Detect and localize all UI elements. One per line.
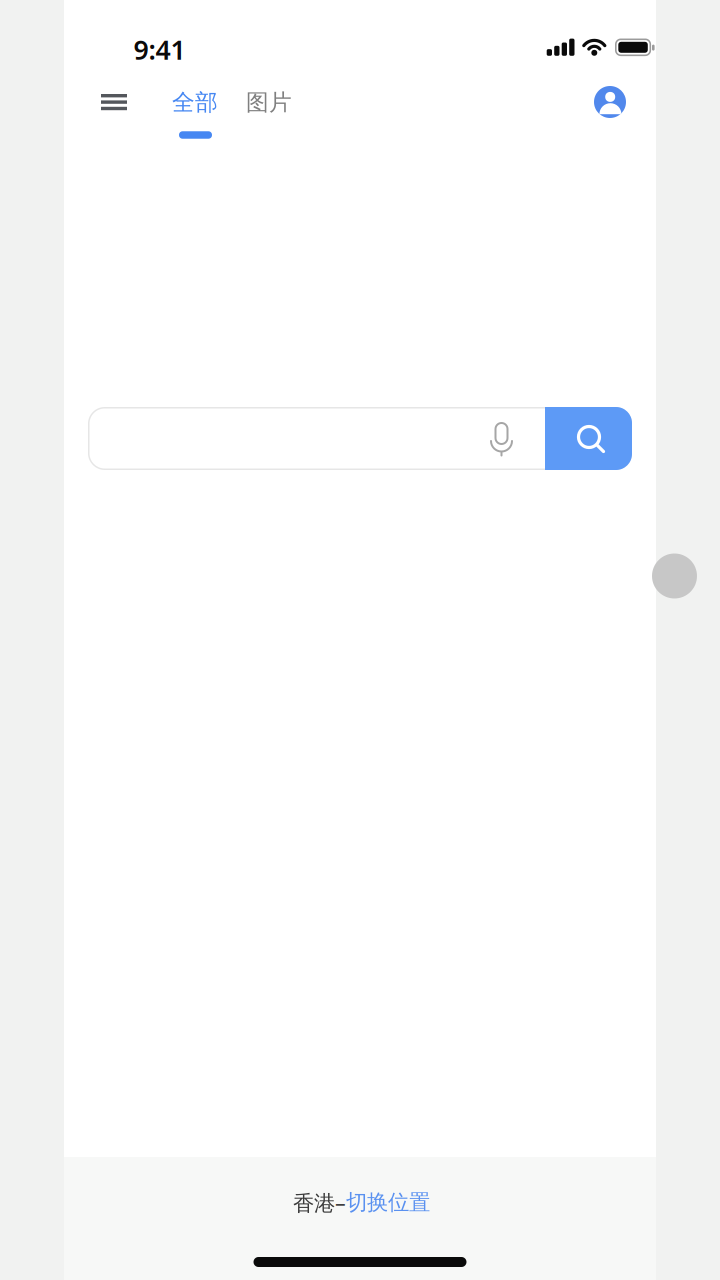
button[interactable]: 全部 [162,78,228,126]
button[interactable]: Search field [88,407,632,470]
button[interactable]: 图片 [236,78,302,126]
staticText: 香港– [293,1188,346,1217]
button[interactable]: Profile [588,80,632,124]
button[interactable]: Search [545,407,632,470]
staticText: 全部 [172,89,218,116]
button[interactable]: Voice search [479,417,523,461]
staticText: 切换位置 [346,1189,430,1216]
staticText: 9:41 [133,32,185,67]
button[interactable]: 切换位置 [346,1189,430,1216]
staticText: 图片 [246,89,292,116]
button[interactable]: Menu [92,80,136,124]
button[interactable]: Assistive ball [652,553,697,598]
